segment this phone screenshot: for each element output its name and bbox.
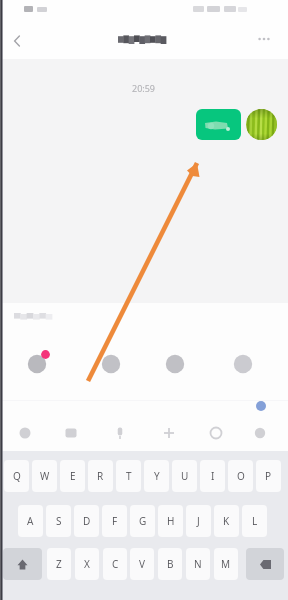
staticText: M — [221, 557, 231, 571]
staticText: B — [167, 557, 174, 571]
button[interactable]: Action — [96, 349, 126, 379]
button[interactable]: H — [158, 505, 183, 537]
button[interactable]: I — [200, 460, 225, 492]
staticText: Y — [154, 469, 160, 483]
button[interactable]: G — [130, 505, 155, 537]
button[interactable]: Tool — [249, 422, 271, 444]
staticText: A — [27, 514, 34, 528]
button[interactable]: W — [32, 460, 57, 492]
button[interactable]: X — [75, 548, 99, 580]
staticText: H — [167, 514, 175, 528]
button[interactable]: Delete — [246, 548, 284, 580]
button[interactable]: A — [18, 505, 43, 537]
button[interactable]: M — [214, 548, 238, 580]
button[interactable]: Tool — [60, 422, 82, 444]
staticText: C — [112, 557, 119, 571]
staticText: O — [237, 469, 245, 483]
button[interactable]: Tool — [109, 422, 131, 444]
button[interactable]: S — [46, 505, 71, 537]
button[interactable]: V — [130, 548, 154, 580]
staticText: K — [223, 514, 230, 528]
button[interactable]: P — [256, 460, 281, 492]
button[interactable]: Tool — [205, 422, 227, 444]
staticText: S — [56, 514, 62, 528]
staticText: U — [181, 469, 189, 483]
staticText: V — [139, 557, 145, 571]
button[interactable] — [196, 109, 241, 140]
button[interactable]: J — [186, 505, 211, 537]
button[interactable]: C — [103, 548, 127, 580]
button[interactable]: Q — [4, 460, 29, 492]
button[interactable]: Tool — [158, 422, 180, 444]
button[interactable]: Back — [3, 27, 31, 55]
button[interactable]: Y — [144, 460, 169, 492]
button[interactable]: More options — [252, 27, 276, 51]
staticText: X — [84, 557, 90, 571]
button[interactable]: Action — [228, 349, 258, 379]
staticText: J — [197, 514, 200, 528]
staticText: G — [139, 514, 147, 528]
button[interactable]: Tool — [14, 422, 36, 444]
button[interactable]: Shift — [3, 548, 42, 580]
button[interactable]: Avatar — [246, 109, 277, 140]
staticText: E — [70, 469, 76, 483]
button[interactable]: E — [60, 460, 85, 492]
staticText: P — [265, 469, 272, 483]
button[interactable]: Action — [22, 349, 52, 379]
button[interactable]: Z — [47, 548, 71, 580]
button[interactable]: R — [88, 460, 113, 492]
staticText: L — [252, 514, 258, 528]
button[interactable]: Action — [160, 349, 190, 379]
staticText: N — [194, 557, 202, 571]
staticText: T — [126, 469, 132, 483]
button[interactable]: K — [214, 505, 239, 537]
button[interactable]: D — [74, 505, 99, 537]
staticText: W — [40, 469, 50, 483]
button[interactable]: N — [186, 548, 210, 580]
button[interactable]: T — [116, 460, 141, 492]
staticText: Q — [13, 469, 21, 483]
staticText: 20:59 — [132, 82, 156, 94]
button[interactable]: L — [242, 505, 267, 537]
staticText: R — [97, 469, 104, 483]
button[interactable]: F — [102, 505, 127, 537]
staticText: I — [211, 469, 215, 483]
staticText: D — [83, 514, 91, 528]
button[interactable]: U — [172, 460, 197, 492]
staticText: Z — [56, 557, 62, 571]
button[interactable]: O — [228, 460, 253, 492]
button[interactable]: B — [158, 548, 182, 580]
staticText: F — [112, 514, 118, 528]
